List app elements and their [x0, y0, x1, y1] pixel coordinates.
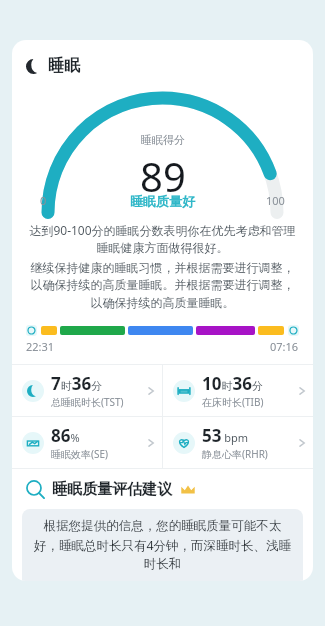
- button[interactable]: 53 bpm: [163, 417, 313, 468]
- staticText: 100: [266, 193, 285, 208]
- staticText: 总睡眠时长(TST): [51, 395, 124, 409]
- other: 详情: [297, 386, 307, 396]
- staticText: 10时36分: [202, 372, 263, 395]
- staticText: 睡眠得分: [141, 133, 185, 147]
- staticText: 0: [40, 193, 47, 208]
- staticText: 睡眠质量评估建议: [52, 480, 172, 499]
- staticText: 睡眠效率(SE): [51, 447, 109, 461]
- staticText: 22:31: [26, 339, 55, 354]
- button[interactable]: 86%: [12, 417, 162, 468]
- staticText: 睡眠: [48, 56, 80, 76]
- staticText: 7时36分: [51, 372, 103, 395]
- staticText: 53 bpm: [202, 424, 249, 447]
- staticText: 继续保持健康的睡眠习惯，并根据需要进行调整，以确保持续的高质量睡眠。并根据需要进…: [26, 260, 299, 311]
- staticText: 07:16: [270, 339, 299, 354]
- other: 详情: [146, 386, 156, 396]
- button[interactable]: 10时36分: [163, 365, 313, 416]
- staticText: 睡眠质量好: [130, 193, 195, 209]
- other: 详情: [297, 438, 307, 448]
- staticText: 89: [140, 149, 186, 203]
- staticText: 在床时长(TIB): [202, 395, 264, 409]
- staticText: 根据您提供的信息，您的睡眠质量可能不太好，睡眠总时长只有4分钟，而深睡时长、浅睡…: [32, 518, 293, 572]
- staticText: 86%: [51, 424, 80, 447]
- staticText: 静息心率(RHR): [202, 447, 268, 461]
- other: 详情: [146, 438, 156, 448]
- staticText: 达到90-100分的睡眠分数表明你在优先考虑和管理睡眠健康方面做得很好。: [26, 222, 299, 256]
- button[interactable]: 7时36分: [12, 365, 162, 416]
